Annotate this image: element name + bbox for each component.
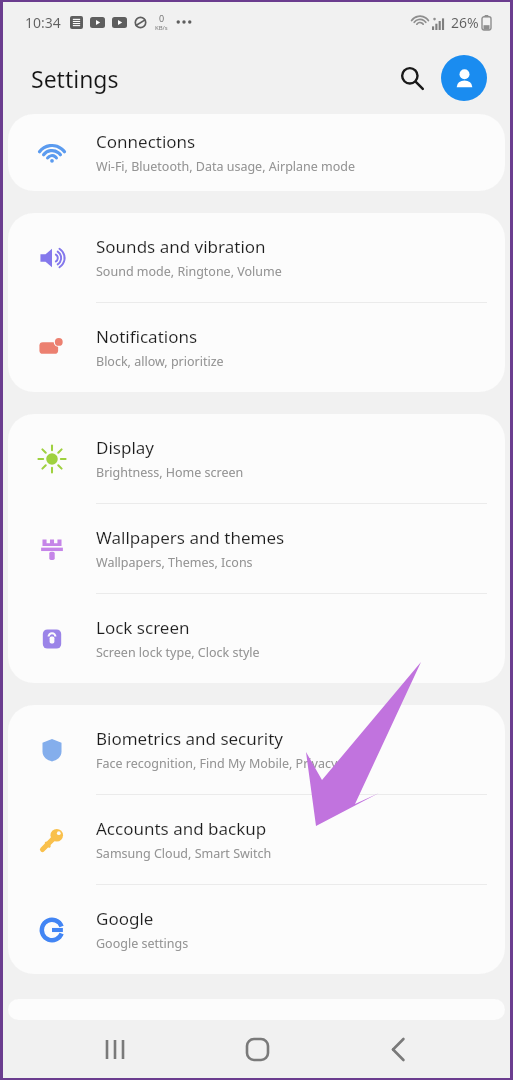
staticText: Google settings [96, 935, 189, 952]
staticText: Settings [31, 63, 119, 94]
button[interactable]: Google [8, 885, 505, 974]
button[interactable]: Lock screen [8, 594, 505, 683]
staticText: 10:34 [25, 13, 61, 32]
staticText: Display [96, 436, 154, 459]
staticText: Accounts and backup [96, 817, 267, 840]
staticText: Samsung Cloud, Smart Switch [96, 845, 272, 862]
staticText: Sound mode, Ringtone, Volume [96, 263, 282, 280]
button[interactable]: Account [441, 55, 487, 101]
button[interactable]: Notifications [8, 303, 505, 392]
staticText: Screen lock type, Clock style [96, 644, 260, 661]
button[interactable]: Wallpapers and themes [8, 504, 505, 593]
staticText: Google [96, 907, 154, 930]
button[interactable]: Display [8, 414, 505, 503]
button[interactable]: Sounds and vibration [8, 213, 505, 302]
staticText: Wallpapers, Themes, Icons [96, 554, 253, 571]
staticText: Face recognition, Find My Mobile, Privac… [96, 755, 338, 772]
staticText: Notifications [96, 325, 198, 348]
staticText: Block, allow, prioritize [96, 353, 224, 370]
button[interactable]: Recent apps [86, 1020, 144, 1078]
button[interactable]: Accounts and backup [8, 795, 505, 884]
button[interactable]: Back [369, 1020, 427, 1078]
staticText: KB/s [155, 24, 168, 32]
staticText: Wi-Fi, Bluetooth, Data usage, Airplane m… [96, 158, 356, 175]
staticText: Lock screen [96, 616, 190, 639]
staticText: Biometrics and security [96, 727, 283, 750]
button[interactable]: Connections [8, 114, 505, 191]
staticText: Connections [96, 130, 196, 153]
staticText: Brightness, Home screen [96, 464, 244, 481]
button[interactable]: Home [228, 1020, 286, 1078]
staticText: Sounds and vibration [96, 235, 266, 258]
staticText: 26% [451, 13, 479, 32]
button[interactable]: Search [389, 55, 435, 101]
staticText: Wallpapers and themes [96, 526, 285, 549]
staticText: 0 [159, 12, 165, 24]
button[interactable]: Biometrics and security [8, 705, 505, 794]
